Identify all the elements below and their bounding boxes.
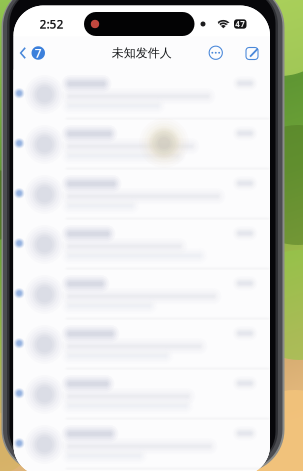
button[interactable]	[13, 369, 270, 419]
button[interactable]	[13, 119, 270, 169]
button[interactable]	[13, 219, 270, 269]
button[interactable]	[13, 419, 270, 469]
button[interactable]: Back	[14, 39, 49, 67]
button[interactable]	[13, 469, 270, 471]
staticText: 47	[235, 19, 245, 29]
button[interactable]: Compose	[239, 39, 266, 66]
button[interactable]: Filters	[202, 39, 229, 66]
button[interactable]	[13, 269, 270, 319]
button[interactable]	[13, 69, 270, 119]
staticText: 未知发件人	[112, 46, 172, 60]
staticText: 2:52	[39, 16, 63, 32]
button[interactable]	[13, 319, 270, 369]
button[interactable]	[13, 169, 270, 219]
staticText: 7	[35, 45, 42, 61]
